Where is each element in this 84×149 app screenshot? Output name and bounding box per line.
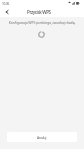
button[interactable]: Back	[2, 7, 12, 17]
staticText: Konfiguracja WPS przebiega, zaczekaj chw…	[4, 20, 80, 25]
staticText: Anuluj	[37, 135, 47, 139]
staticText: 10:06	[2, 2, 10, 6]
staticText: Przycisk WPS	[27, 9, 51, 15]
other: Loading	[38, 31, 45, 38]
button[interactable]: Anuluj	[7, 132, 77, 142]
